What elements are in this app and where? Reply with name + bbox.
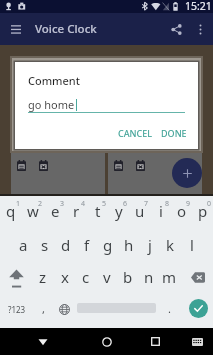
staticText: CANCEL xyxy=(118,127,153,139)
staticText: DONE xyxy=(161,127,187,139)
button[interactable]: d xyxy=(55,229,76,262)
staticText: c xyxy=(82,267,90,287)
staticText: 3 xyxy=(60,199,65,209)
other: Set alarm xyxy=(114,160,123,171)
staticText: f xyxy=(84,235,90,255)
button[interactable]: Open navigation drawer xyxy=(0,13,31,45)
staticText: m xyxy=(162,267,177,287)
staticText: q xyxy=(6,201,16,221)
button[interactable]: c xyxy=(75,262,96,295)
button[interactable]: Switch keyboard xyxy=(182,328,213,355)
staticText: i xyxy=(159,201,163,221)
staticText: ?123 xyxy=(8,304,26,315)
staticText: a xyxy=(19,235,28,255)
staticText: . xyxy=(168,301,171,316)
button[interactable]: v xyxy=(96,262,117,295)
button[interactable]: DONE xyxy=(157,123,192,143)
button[interactable]: Recent apps xyxy=(128,328,182,355)
button[interactable]: ?123 xyxy=(0,295,33,328)
button[interactable]: CANCEL xyxy=(113,123,157,143)
button[interactable]: 3 xyxy=(44,196,66,229)
button[interactable]: Change keyboard language xyxy=(52,295,76,328)
button[interactable]: . xyxy=(160,295,178,328)
button[interactable]: x xyxy=(54,262,75,295)
button[interactable]: Set alarm xyxy=(11,153,105,194)
button[interactable]: l xyxy=(181,229,202,262)
staticText: go home xyxy=(28,97,75,112)
button[interactable]: , xyxy=(33,295,53,328)
staticText: u xyxy=(135,201,145,221)
staticText: 4 xyxy=(81,199,86,209)
button[interactable]: b xyxy=(117,262,138,295)
staticText: h xyxy=(124,235,134,255)
staticText: e xyxy=(51,201,60,221)
staticText: o xyxy=(177,201,187,221)
staticText: , xyxy=(42,301,45,316)
staticText: y xyxy=(115,201,123,221)
button[interactable]: g xyxy=(97,229,118,262)
staticText: z xyxy=(39,267,47,287)
staticText: Comment xyxy=(28,73,80,88)
button[interactable]: Enter xyxy=(181,295,213,328)
staticText: 9 xyxy=(186,199,191,209)
button[interactable]: Share xyxy=(158,13,188,45)
staticText: p xyxy=(198,201,208,221)
staticText: j xyxy=(148,235,152,255)
button[interactable]: m xyxy=(159,262,180,295)
button[interactable]: More options xyxy=(188,13,213,45)
staticText: t xyxy=(95,201,101,221)
staticText: Voice Clock xyxy=(35,21,97,37)
staticText: w xyxy=(27,201,39,221)
button[interactable]: 8 xyxy=(150,196,171,229)
button[interactable]: Back xyxy=(0,328,85,355)
button[interactable]: Set alarm xyxy=(108,153,202,194)
staticText: x xyxy=(61,267,69,287)
staticText: 15:21 xyxy=(185,0,212,12)
button[interactable]: 1 xyxy=(0,196,22,229)
button[interactable]: 2 xyxy=(22,196,44,229)
other: Set alarm xyxy=(17,160,26,171)
button[interactable]: 5 xyxy=(87,196,108,229)
staticText: v xyxy=(103,267,111,287)
staticText: 5 xyxy=(102,199,107,209)
staticText: 6 xyxy=(123,199,128,209)
staticText: l xyxy=(190,235,194,255)
staticText: 7 xyxy=(144,199,149,209)
button[interactable]: Shift xyxy=(0,262,32,295)
staticText: k xyxy=(166,235,175,255)
staticText: r xyxy=(73,201,80,221)
button[interactable]: f xyxy=(76,229,97,262)
staticText: 8 xyxy=(165,199,170,209)
staticText: n xyxy=(144,267,154,287)
other: Cancel alarm xyxy=(39,160,48,171)
button[interactable]: 9 xyxy=(171,196,192,229)
staticText: 2 xyxy=(38,199,43,209)
button[interactable]: 7 xyxy=(129,196,150,229)
button[interactable]: 6 xyxy=(108,196,129,229)
staticText: 0 xyxy=(207,199,212,209)
staticText: 1 xyxy=(16,199,21,209)
button[interactable]: a xyxy=(12,229,34,262)
button[interactable]: k xyxy=(160,229,181,262)
button[interactable]: s xyxy=(34,229,55,262)
button[interactable]: Home xyxy=(85,328,128,355)
button[interactable]: Add xyxy=(172,158,202,188)
button[interactable]: h xyxy=(118,229,139,262)
button[interactable]: 4 xyxy=(66,196,87,229)
staticText: s xyxy=(41,235,49,255)
staticText: d xyxy=(61,235,71,255)
staticText: g xyxy=(103,235,113,255)
staticText: b xyxy=(123,267,133,287)
other: Cancel alarm xyxy=(136,160,145,171)
button[interactable]: j xyxy=(139,229,160,262)
button[interactable]: Delete xyxy=(180,262,213,295)
button[interactable]: n xyxy=(138,262,159,295)
button[interactable]: 0 xyxy=(192,196,213,229)
button[interactable]: z xyxy=(32,262,54,295)
